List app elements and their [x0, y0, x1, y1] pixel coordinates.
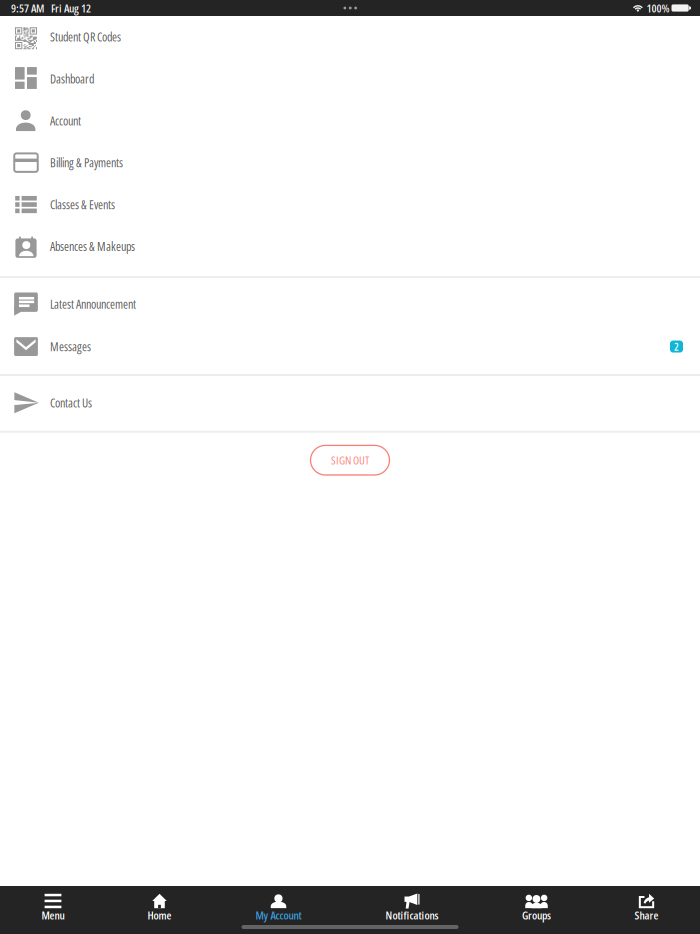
staticText: 100%	[646, 0, 669, 16]
staticText: Menu	[41, 907, 64, 923]
button[interactable]: Notifications	[344, 886, 480, 934]
button[interactable]: Menu	[0, 886, 106, 934]
staticText: Home	[147, 907, 171, 923]
button[interactable]: Groups	[480, 886, 593, 934]
staticText: Contact Us	[50, 395, 92, 411]
staticText: Absences & Makeups	[50, 238, 135, 255]
staticText: Latest Announcement	[50, 296, 136, 312]
staticText: Share	[634, 907, 658, 923]
staticText: Dashboard	[50, 71, 94, 87]
button[interactable]: Classes & Events	[0, 184, 700, 225]
button[interactable]: Messages	[0, 325, 700, 368]
button[interactable]: Absences & Makeups	[0, 225, 700, 267]
staticText: Messages	[50, 338, 91, 355]
staticText: Notifications	[385, 907, 438, 923]
button[interactable]: Share	[593, 886, 700, 934]
button[interactable]: Latest Announcement	[0, 283, 700, 325]
button[interactable]: My Account	[213, 886, 344, 934]
staticText: Billing & Payments	[50, 154, 123, 171]
staticText: Groups	[522, 907, 551, 923]
staticText: Student QR Codes	[50, 29, 121, 45]
staticText: Classes & Events	[50, 196, 115, 213]
staticText: 9:57 AM	[11, 0, 44, 16]
button[interactable]: Home	[106, 886, 213, 934]
staticText: Fri Aug 12	[51, 0, 91, 16]
staticText: 2	[674, 339, 679, 354]
staticText: Account	[50, 113, 81, 129]
button[interactable]: Dashboard	[0, 58, 700, 100]
button[interactable]: Billing & Payments	[0, 142, 700, 184]
button[interactable]: Contact Us	[0, 381, 700, 424]
staticText: My Account	[255, 907, 301, 923]
button[interactable]: Account	[0, 100, 700, 142]
button[interactable]: SIGN OUT	[310, 445, 389, 475]
button[interactable]: Student QR Codes	[0, 16, 700, 58]
staticText: SIGN OUT	[331, 452, 369, 468]
